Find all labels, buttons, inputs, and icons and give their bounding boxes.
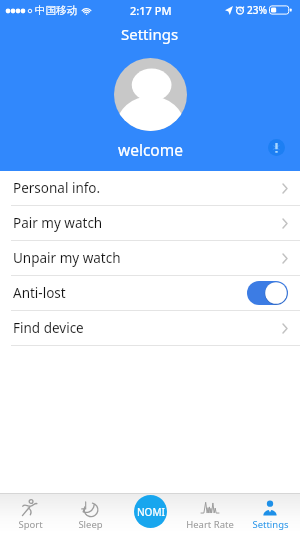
button[interactable]: Sleep [60,493,120,533]
button[interactable]: Unpair my watch [0,241,300,276]
staticText: Personal info. [13,179,101,197]
button[interactable]: Personal info. [0,171,300,206]
staticText: 2:17 PM [130,3,172,18]
staticText: Pair my watch [13,214,103,232]
button[interactable]: Anti-lost [0,276,300,311]
staticText: Anti-lost [13,284,66,302]
staticText: Settings [121,24,179,44]
button[interactable]: Bluetooth disconnected [268,139,285,156]
staticText: Unpair my watch [13,249,121,267]
button[interactable]: Pair my watch [0,206,300,241]
staticText: 中国移动 [35,4,77,17]
staticText: welcome [118,139,183,160]
button[interactable]: Heart Rate [180,493,240,533]
staticText: Settings [252,518,289,531]
button[interactable]: Settings [240,493,300,533]
staticText: Sleep [78,518,103,531]
staticText: Heart Rate [186,518,234,531]
staticText: 23% [247,3,267,17]
button[interactable]: Sport [0,493,60,533]
staticText: NOMI [137,505,165,519]
button[interactable]: NOMI [134,495,167,528]
staticText: Sport [18,518,43,531]
button[interactable]: Find device [0,311,300,346]
staticText: Find device [13,319,84,337]
